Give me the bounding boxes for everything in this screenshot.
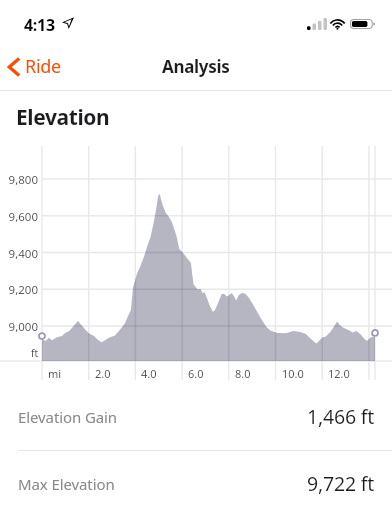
staticText: 9,000 [0, 319, 38, 335]
staticText: Elevation [16, 103, 110, 132]
staticText: 12.0 [328, 366, 350, 381]
staticText: 8.0 [235, 366, 251, 381]
staticText: 4:13 [24, 14, 55, 36]
staticText: 4.0 [141, 366, 157, 381]
staticText: Max Elevation [18, 474, 115, 494]
staticText: Elevation Gain [18, 407, 118, 427]
staticText: 9,400 [0, 246, 38, 262]
staticText: 2.0 [95, 366, 111, 381]
staticText: 1,466 ft [307, 403, 375, 430]
staticText: 9,800 [0, 172, 38, 188]
button[interactable]: Max Elevation [0, 461, 392, 506]
button[interactable]: Elevation Gain [0, 394, 392, 439]
staticText: ft [0, 346, 38, 360]
button[interactable]: Elevation profile chart [0, 140, 392, 380]
staticText: 6.0 [188, 366, 204, 381]
staticText: 9,722 ft [307, 470, 375, 497]
button[interactable]: Back to Ride [0, 50, 75, 83]
staticText: Ride [25, 54, 61, 79]
staticText: 9,200 [0, 282, 38, 298]
staticText: mi [48, 366, 62, 381]
staticText: Analysis [162, 55, 230, 78]
staticText: 10.0 [282, 366, 304, 381]
staticText: 9,600 [0, 209, 38, 225]
